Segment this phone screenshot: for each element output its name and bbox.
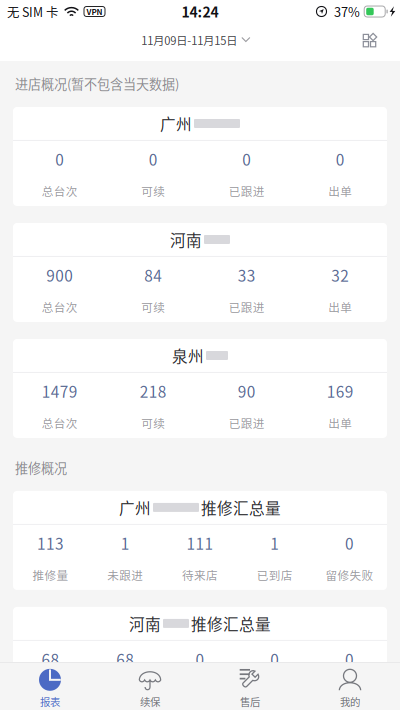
staticText: 0 bbox=[242, 148, 251, 170]
staticText: 泉州 bbox=[172, 344, 204, 367]
staticText: 河南 bbox=[129, 612, 161, 635]
staticText: 1479 bbox=[42, 380, 78, 402]
button[interactable]: 售后 bbox=[200, 663, 300, 710]
staticText: 0 bbox=[149, 148, 158, 170]
button[interactable]: 续保 bbox=[100, 663, 200, 710]
button[interactable]: 我的 bbox=[300, 663, 400, 710]
staticText: 续保 bbox=[140, 694, 160, 709]
staticText: 32 bbox=[331, 264, 349, 286]
staticText: 14:24 bbox=[181, 1, 218, 22]
staticText: 留修失败 bbox=[326, 566, 374, 583]
staticText: 1 bbox=[121, 532, 130, 554]
staticText: 出单 bbox=[328, 299, 352, 315]
staticText: 900 bbox=[46, 264, 73, 286]
staticText: 1 bbox=[270, 532, 279, 554]
staticText: 无 SIM 卡 bbox=[7, 2, 58, 20]
staticText: 未跟进 bbox=[107, 566, 143, 583]
staticText: 总台次 bbox=[42, 183, 78, 199]
staticText: 0 bbox=[345, 648, 354, 670]
staticText: 总台次 bbox=[42, 299, 78, 315]
staticText: 169 bbox=[327, 380, 354, 402]
staticText: 总台次 bbox=[42, 415, 78, 431]
staticText: 已到店 bbox=[257, 566, 293, 583]
staticText: 广州 bbox=[160, 112, 192, 135]
staticText: 留修失败 bbox=[326, 682, 374, 699]
staticText: 33 bbox=[238, 264, 256, 286]
staticText: 113 bbox=[37, 532, 64, 554]
staticText: 0 bbox=[270, 648, 279, 670]
staticText: 可续 bbox=[141, 415, 165, 431]
staticText: 68 bbox=[116, 648, 134, 670]
staticText: 未跟进 bbox=[107, 682, 143, 699]
staticText: 已跟进 bbox=[229, 415, 265, 431]
staticText: 218 bbox=[140, 380, 167, 402]
button[interactable]: 11月09日-11月15日 bbox=[141, 27, 259, 53]
button[interactable]: 报表 bbox=[0, 663, 100, 710]
staticText: 可续 bbox=[141, 183, 165, 199]
staticText: 90 bbox=[238, 380, 256, 402]
staticText: 11月09日-11月15日 bbox=[141, 32, 237, 48]
staticText: 推修概况 bbox=[15, 458, 67, 477]
staticText: 0 bbox=[345, 532, 354, 554]
staticText: 已到店 bbox=[257, 682, 293, 699]
staticText: 68 bbox=[41, 648, 59, 670]
staticText: VPN bbox=[86, 6, 102, 17]
button[interactable]: 应用 bbox=[353, 27, 387, 53]
staticText: 推修量 bbox=[32, 682, 68, 699]
staticText: 111 bbox=[186, 532, 213, 554]
staticText: 推修汇总量 bbox=[201, 496, 281, 519]
staticText: 推修量 bbox=[32, 566, 68, 583]
staticText: 我的 bbox=[340, 694, 360, 709]
staticText: 待来店 bbox=[182, 566, 218, 583]
staticText: 0 bbox=[195, 648, 204, 670]
staticText: 推修汇总量 bbox=[191, 612, 271, 635]
staticText: 可续 bbox=[141, 299, 165, 315]
staticText: 河南 bbox=[170, 228, 202, 251]
staticText: 进店概况(暂不包含当天数据) bbox=[15, 74, 179, 93]
staticText: 售后 bbox=[240, 694, 260, 709]
staticText: 0 bbox=[55, 148, 64, 170]
staticText: 已跟进 bbox=[229, 299, 265, 315]
staticText: 广州 bbox=[119, 496, 151, 519]
staticText: 37% bbox=[334, 2, 360, 21]
staticText: 84 bbox=[144, 264, 162, 286]
staticText: 出单 bbox=[328, 183, 352, 199]
staticText: 出单 bbox=[328, 415, 352, 431]
staticText: 报表 bbox=[40, 694, 60, 709]
staticText: 已跟进 bbox=[229, 183, 265, 199]
staticText: 0 bbox=[336, 148, 345, 170]
